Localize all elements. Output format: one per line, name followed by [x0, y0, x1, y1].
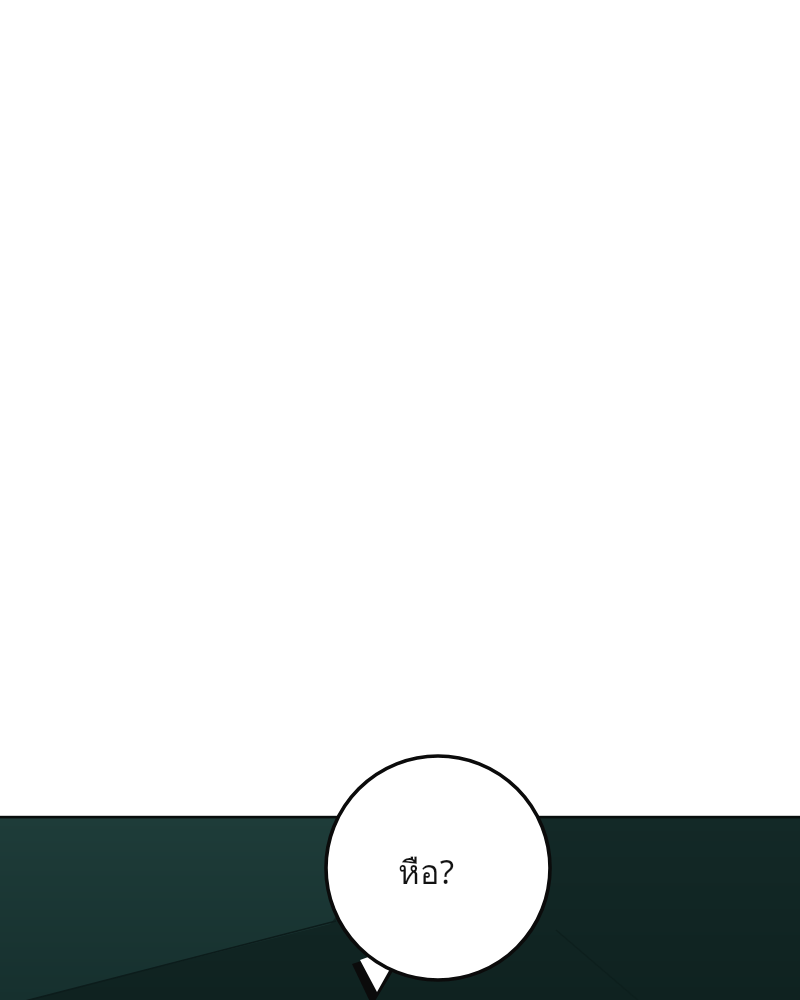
staticText: หือ?	[398, 846, 454, 898]
